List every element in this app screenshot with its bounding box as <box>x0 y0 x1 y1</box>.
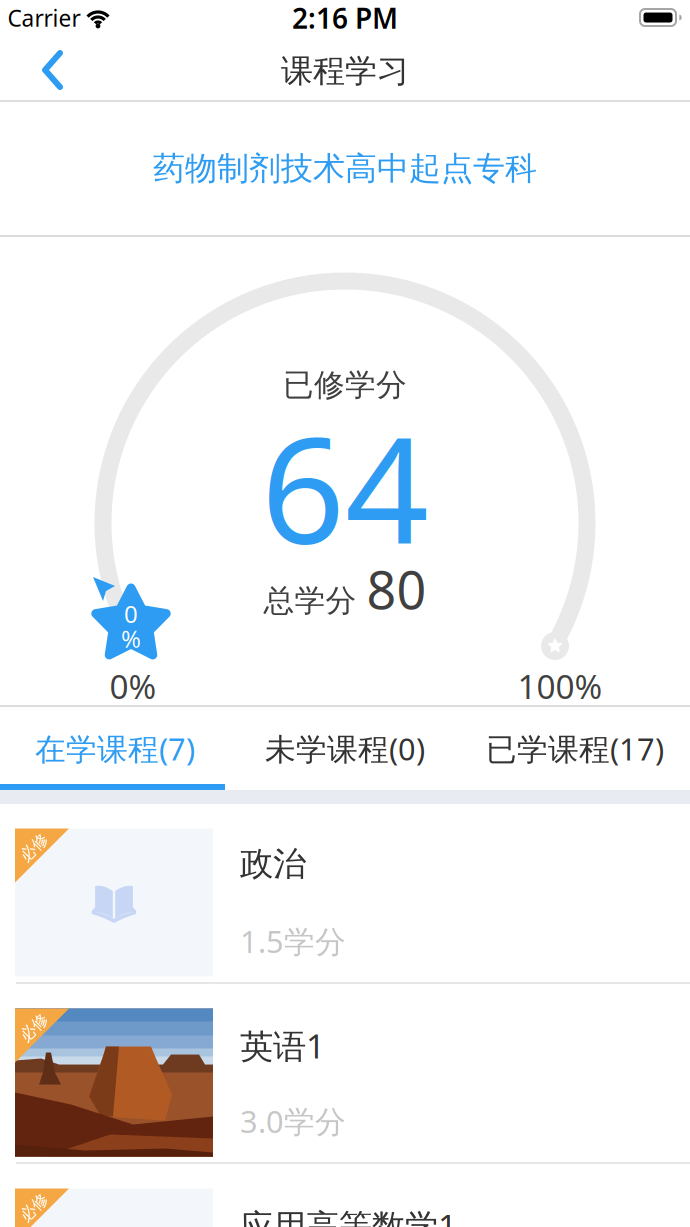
staticText: 0 <box>124 598 138 629</box>
staticText: 已学课程(17) <box>486 728 664 769</box>
staticText: 在学课程(7) <box>35 728 195 769</box>
staticText: 100% <box>517 664 602 708</box>
staticText: 0% <box>109 664 156 708</box>
button[interactable]: 未学课程(0) <box>230 710 460 787</box>
staticText: 64 <box>261 390 429 584</box>
staticText: 总学分 <box>263 582 356 620</box>
button[interactable]: 必修 <box>0 984 690 1164</box>
staticText: Carrier <box>7 3 80 33</box>
button[interactable]: 必修 <box>0 804 690 984</box>
button[interactable]: 药物制剂技术高中起点专科 <box>0 102 690 235</box>
button[interactable]: Back <box>0 40 100 100</box>
staticText: 英语1 <box>240 1023 325 1068</box>
staticText: % <box>121 622 141 654</box>
staticText: 3.0学分 <box>240 1101 346 1141</box>
staticText: 药物制剂技术高中起点专科 <box>153 149 537 188</box>
button[interactable]: 已学课程(17) <box>460 710 690 787</box>
staticText: 必修 <box>18 838 50 857</box>
staticText: 必修 <box>18 1198 50 1217</box>
button[interactable]: 在学课程(7) <box>0 710 230 787</box>
staticText: 1.5学分 <box>240 921 346 961</box>
staticText: 应用高等数学1 <box>240 1203 457 1227</box>
button[interactable]: 必修 <box>0 1164 690 1227</box>
staticText: 2:16 PM <box>292 0 398 37</box>
staticText: 未学课程(0) <box>265 728 425 769</box>
staticText: 政治 <box>240 843 306 884</box>
staticText: 课程学习 <box>281 51 409 91</box>
staticText: 80 <box>366 554 426 624</box>
staticText: 必修 <box>18 1018 50 1037</box>
staticText: 已修学分 <box>283 366 407 404</box>
